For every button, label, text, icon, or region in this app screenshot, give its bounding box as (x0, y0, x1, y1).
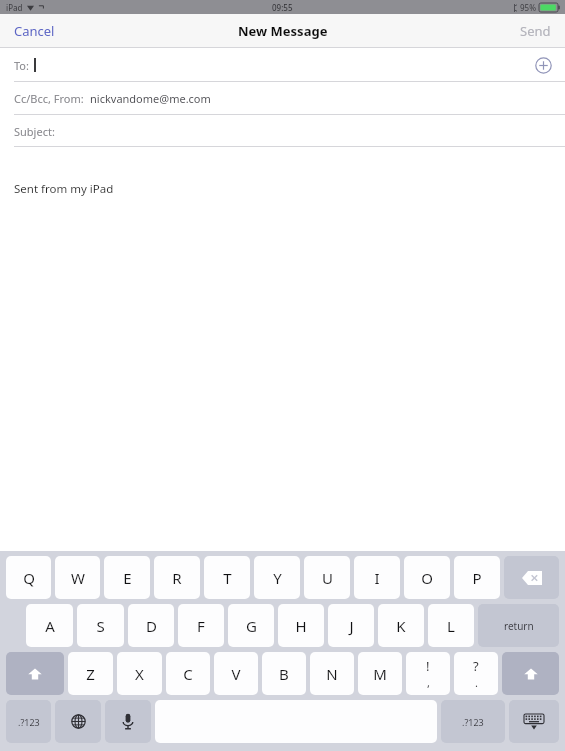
staticText: I (374, 568, 380, 588)
button[interactable]: Shift (502, 652, 559, 695)
staticText: ? (473, 657, 479, 675)
staticText: H (295, 616, 307, 636)
button[interactable]: D (128, 604, 174, 647)
button[interactable]: .?123 (6, 700, 51, 743)
button[interactable]: I (354, 556, 400, 599)
button[interactable]: L (428, 604, 474, 647)
staticText: F (197, 616, 205, 636)
staticText: New Message (238, 22, 328, 40)
button[interactable]: R (154, 556, 200, 599)
staticText: B (279, 664, 289, 684)
button[interactable]: M (358, 652, 402, 695)
button[interactable]: Change keyboard (55, 700, 101, 743)
staticText: Cancel (14, 22, 55, 40)
button[interactable]: Send (512, 17, 559, 45)
button[interactable]: Add contact (531, 53, 555, 77)
staticText: X (135, 664, 144, 684)
staticText: nickvandome@me.com (90, 91, 211, 106)
button[interactable]: Sent from my iPad (0, 147, 565, 551)
button[interactable]: O (404, 556, 450, 599)
staticText: Q (23, 568, 35, 588)
staticText: D (146, 616, 157, 636)
staticText: return (504, 619, 534, 633)
button[interactable]: J (328, 604, 374, 647)
button[interactable]: Hide keyboard (509, 700, 559, 743)
button[interactable]: S (77, 604, 124, 647)
staticText: 09:55 (272, 2, 293, 13)
button[interactable]: C (166, 652, 210, 695)
staticText: Subject: (14, 124, 55, 139)
staticText: U (322, 568, 333, 588)
staticText: , (427, 675, 430, 690)
staticText: ! (426, 657, 430, 675)
button[interactable]: V (214, 652, 258, 695)
button[interactable]: G (228, 604, 274, 647)
staticText: Y (273, 568, 282, 588)
button[interactable]: F (178, 604, 224, 647)
staticText: M (373, 664, 387, 684)
staticText: T (223, 568, 232, 588)
staticText: To: (14, 58, 29, 73)
staticText: W (71, 568, 85, 588)
button[interactable]: Shift (6, 652, 64, 695)
button[interactable]: N (310, 652, 354, 695)
button[interactable]: P (454, 556, 500, 599)
staticText: Cc/Bcc, From: (14, 91, 84, 106)
staticText: J (349, 616, 354, 636)
staticText: .?123 (462, 716, 484, 728)
button[interactable]: Dictate (105, 700, 151, 743)
staticText: .?123 (18, 716, 40, 728)
button[interactable]: To: (0, 48, 565, 82)
staticText: N (326, 664, 338, 684)
staticText: C (183, 664, 193, 684)
button[interactable]: X (117, 652, 162, 695)
staticText: E (123, 568, 132, 588)
button[interactable]: Y (254, 556, 300, 599)
button[interactable]: Cc/Bcc, From: (0, 82, 565, 115)
button[interactable]: ! (406, 652, 450, 695)
button[interactable]: Cancel (6, 17, 63, 45)
staticText: A (45, 616, 55, 636)
staticText: Send (520, 22, 551, 40)
button[interactable]: .?123 (441, 700, 505, 743)
button[interactable]: K (378, 604, 424, 647)
button[interactable]: B (262, 652, 306, 695)
staticText: P (472, 568, 482, 588)
staticText: R (172, 568, 182, 588)
staticText: Z (86, 664, 95, 684)
button[interactable]: Q (6, 556, 51, 599)
staticText: 95% (520, 2, 536, 13)
staticText: . (475, 675, 478, 690)
button[interactable]: W (55, 556, 100, 599)
staticText: Sent from my iPad (14, 181, 114, 197)
staticText: S (96, 616, 105, 636)
button[interactable]: Z (68, 652, 113, 695)
button[interactable]: A (26, 604, 73, 647)
staticText: K (396, 616, 406, 636)
staticText: O (421, 568, 433, 588)
staticText: L (447, 616, 455, 636)
staticText: V (231, 664, 241, 684)
staticText: G (246, 616, 257, 636)
button[interactable]: Backspace (504, 556, 559, 599)
staticText: iPad (6, 2, 23, 13)
button[interactable]: Subject: (0, 115, 565, 147)
button[interactable]: U (304, 556, 350, 599)
button[interactable]: H (278, 604, 324, 647)
button[interactable]: T (204, 556, 250, 599)
button[interactable]: E (104, 556, 150, 599)
button[interactable]: return (478, 604, 559, 647)
button[interactable]: ? (454, 652, 498, 695)
